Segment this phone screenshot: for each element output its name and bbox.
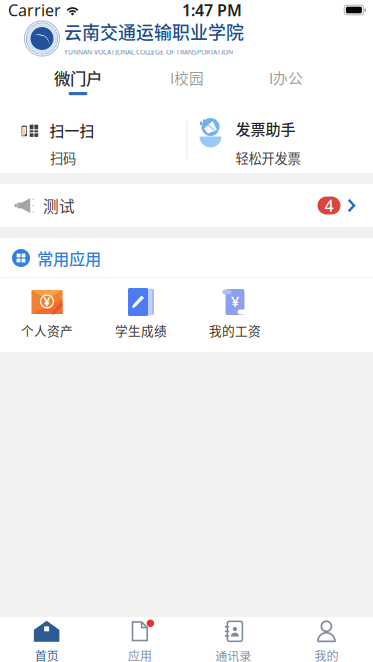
button[interactable]: 通讯录	[186, 617, 280, 662]
staticText: YUNNAN VOCATIONAL COLLEGE OF TRANSPORTAT…	[64, 47, 233, 56]
button[interactable]: 学生成绩	[94, 278, 188, 341]
button[interactable]: 扫一扫	[0, 106, 186, 173]
staticText: 1:47 PM	[182, 0, 242, 21]
staticText: 测试	[43, 194, 75, 217]
staticText: ¥	[43, 293, 50, 309]
staticText: 发票助手	[235, 118, 295, 139]
staticText: I校园	[170, 67, 204, 88]
button[interactable]: ¥	[188, 278, 282, 341]
staticText: 我的	[314, 647, 338, 662]
staticText: 学生成绩	[115, 321, 167, 339]
button[interactable]: 应用	[93, 617, 186, 662]
staticText: 云南交通运输职业学院	[64, 19, 244, 44]
button[interactable]: 我的	[280, 617, 373, 662]
staticText: 微门户	[54, 66, 102, 89]
staticText: 4	[324, 195, 333, 216]
staticText: 首页	[35, 647, 59, 662]
button[interactable]: I办公	[234, 57, 338, 98]
button[interactable]: 发票助手	[186, 106, 373, 173]
staticText: 扫一扫	[49, 119, 94, 141]
staticText: 轻松开发票	[235, 148, 300, 167]
staticText: 个人资产	[21, 321, 73, 339]
staticText: 常用应用	[37, 246, 101, 270]
button[interactable]: 首页	[0, 617, 93, 662]
staticText: I办公	[269, 67, 303, 88]
staticText: Carrier	[8, 0, 61, 21]
button[interactable]: I校园	[130, 57, 234, 98]
staticText: 应用	[128, 647, 152, 662]
button[interactable]: ¥	[0, 278, 94, 341]
button[interactable]: 测试	[0, 184, 373, 227]
staticText: 我的工资	[209, 321, 261, 339]
button[interactable]: 微门户	[26, 57, 130, 98]
staticText: 通讯录	[215, 647, 251, 662]
staticText: 扫码	[50, 148, 76, 167]
staticText: ¥	[231, 291, 239, 311]
